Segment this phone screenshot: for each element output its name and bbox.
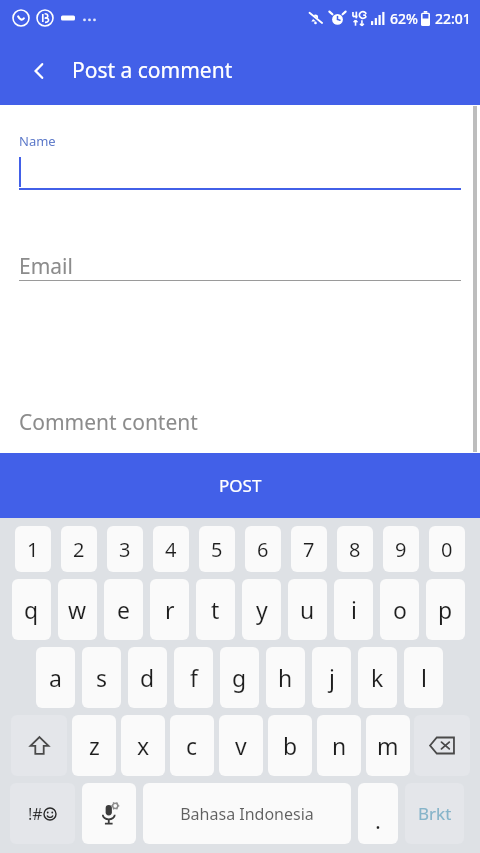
staticText: 8 xyxy=(349,536,361,563)
button[interactable]: p xyxy=(426,579,465,640)
staticText: 3 xyxy=(119,536,131,563)
button[interactable]: Brkt xyxy=(405,783,464,844)
button[interactable]: m xyxy=(366,715,410,776)
staticText: o xyxy=(393,594,407,625)
button[interactable]: n xyxy=(317,715,361,776)
staticText: !# xyxy=(28,803,43,825)
staticText: e xyxy=(117,594,130,625)
staticText: 9 xyxy=(395,536,407,563)
button[interactable]: t xyxy=(196,579,235,640)
button[interactable]: d xyxy=(128,647,167,708)
button[interactable]: o xyxy=(380,579,419,640)
staticText: w xyxy=(68,594,87,625)
button[interactable]: g xyxy=(220,647,259,708)
staticText: p xyxy=(438,594,453,625)
button[interactable]: 8 xyxy=(337,526,373,572)
button[interactable]: 9 xyxy=(383,526,419,572)
button[interactable]: Email xyxy=(19,252,73,281)
button[interactable]: Comment content xyxy=(19,408,198,437)
button[interactable]: e xyxy=(104,579,143,640)
staticText: j xyxy=(329,662,335,693)
button[interactable]: y xyxy=(242,579,281,640)
button[interactable]: s xyxy=(82,647,121,708)
button[interactable]: b xyxy=(268,715,312,776)
staticText: c xyxy=(186,730,198,761)
staticText: l xyxy=(421,662,427,693)
button[interactable]: i xyxy=(334,579,373,640)
button[interactable]: v xyxy=(219,715,263,776)
staticText: 22:01 xyxy=(435,9,471,28)
button[interactable]: f xyxy=(174,647,213,708)
button[interactable]: 0 xyxy=(429,526,465,572)
staticText: d xyxy=(140,662,155,693)
button[interactable]: r xyxy=(150,579,189,640)
staticText: 62% xyxy=(390,9,418,28)
button[interactable]: . xyxy=(358,783,398,844)
staticText: 0 xyxy=(441,536,453,563)
staticText: Brkt xyxy=(418,802,452,825)
button[interactable]: Voice input xyxy=(82,783,136,844)
staticText: Bahasa Indonesia xyxy=(180,803,314,825)
button[interactable]: c xyxy=(170,715,214,776)
staticText: Post a comment xyxy=(72,56,233,85)
staticText: r xyxy=(165,594,175,625)
staticText: 2 xyxy=(73,536,85,563)
staticText: n xyxy=(332,730,347,761)
button[interactable]: Back xyxy=(20,52,58,90)
button[interactable]: Symbols xyxy=(10,783,75,844)
staticText: y xyxy=(256,594,268,625)
staticText: m xyxy=(377,730,399,761)
staticText: u xyxy=(300,594,315,625)
staticText: b xyxy=(283,730,298,761)
staticText: t xyxy=(211,594,220,625)
staticText: k xyxy=(371,662,384,693)
button[interactable]: POST xyxy=(0,453,480,518)
staticText: q xyxy=(24,594,39,625)
staticText: i xyxy=(351,594,357,625)
button[interactable]: k xyxy=(358,647,397,708)
staticText: f xyxy=(190,662,198,693)
staticText: g xyxy=(232,662,247,693)
button[interactable]: 2 xyxy=(61,526,97,572)
staticText: 1 xyxy=(27,536,39,563)
staticText: v xyxy=(235,730,247,761)
button[interactable]: Backspace xyxy=(414,715,470,776)
button[interactable]: q xyxy=(12,579,51,640)
button[interactable]: j xyxy=(312,647,351,708)
button[interactable]: w xyxy=(58,579,97,640)
staticText: 6 xyxy=(257,536,269,563)
button[interactable]: 1 xyxy=(15,526,51,572)
staticText: 7 xyxy=(303,536,315,563)
button[interactable]: a xyxy=(36,647,75,708)
button[interactable]: l xyxy=(404,647,443,708)
button[interactable]: 3 xyxy=(107,526,143,572)
staticText: z xyxy=(89,730,100,761)
button[interactable]: 5 xyxy=(199,526,235,572)
button[interactable]: z xyxy=(72,715,116,776)
button[interactable]: h xyxy=(266,647,305,708)
button[interactable]: 7 xyxy=(291,526,327,572)
staticText: . xyxy=(375,805,381,835)
staticText: 5 xyxy=(211,536,223,563)
button[interactable]: Shift xyxy=(11,715,67,776)
staticText: 4 xyxy=(165,536,177,563)
staticText: x xyxy=(137,730,150,761)
button[interactable]: u xyxy=(288,579,327,640)
button[interactable]: 4 xyxy=(153,526,189,572)
staticText: a xyxy=(49,662,62,693)
staticText: POST xyxy=(219,474,262,497)
staticText: s xyxy=(96,662,108,693)
staticText: h xyxy=(278,662,293,693)
staticText: Name xyxy=(19,132,56,150)
button[interactable]: 6 xyxy=(245,526,281,572)
button[interactable]: x xyxy=(121,715,165,776)
button[interactable]: Bahasa Indonesia xyxy=(143,783,351,844)
